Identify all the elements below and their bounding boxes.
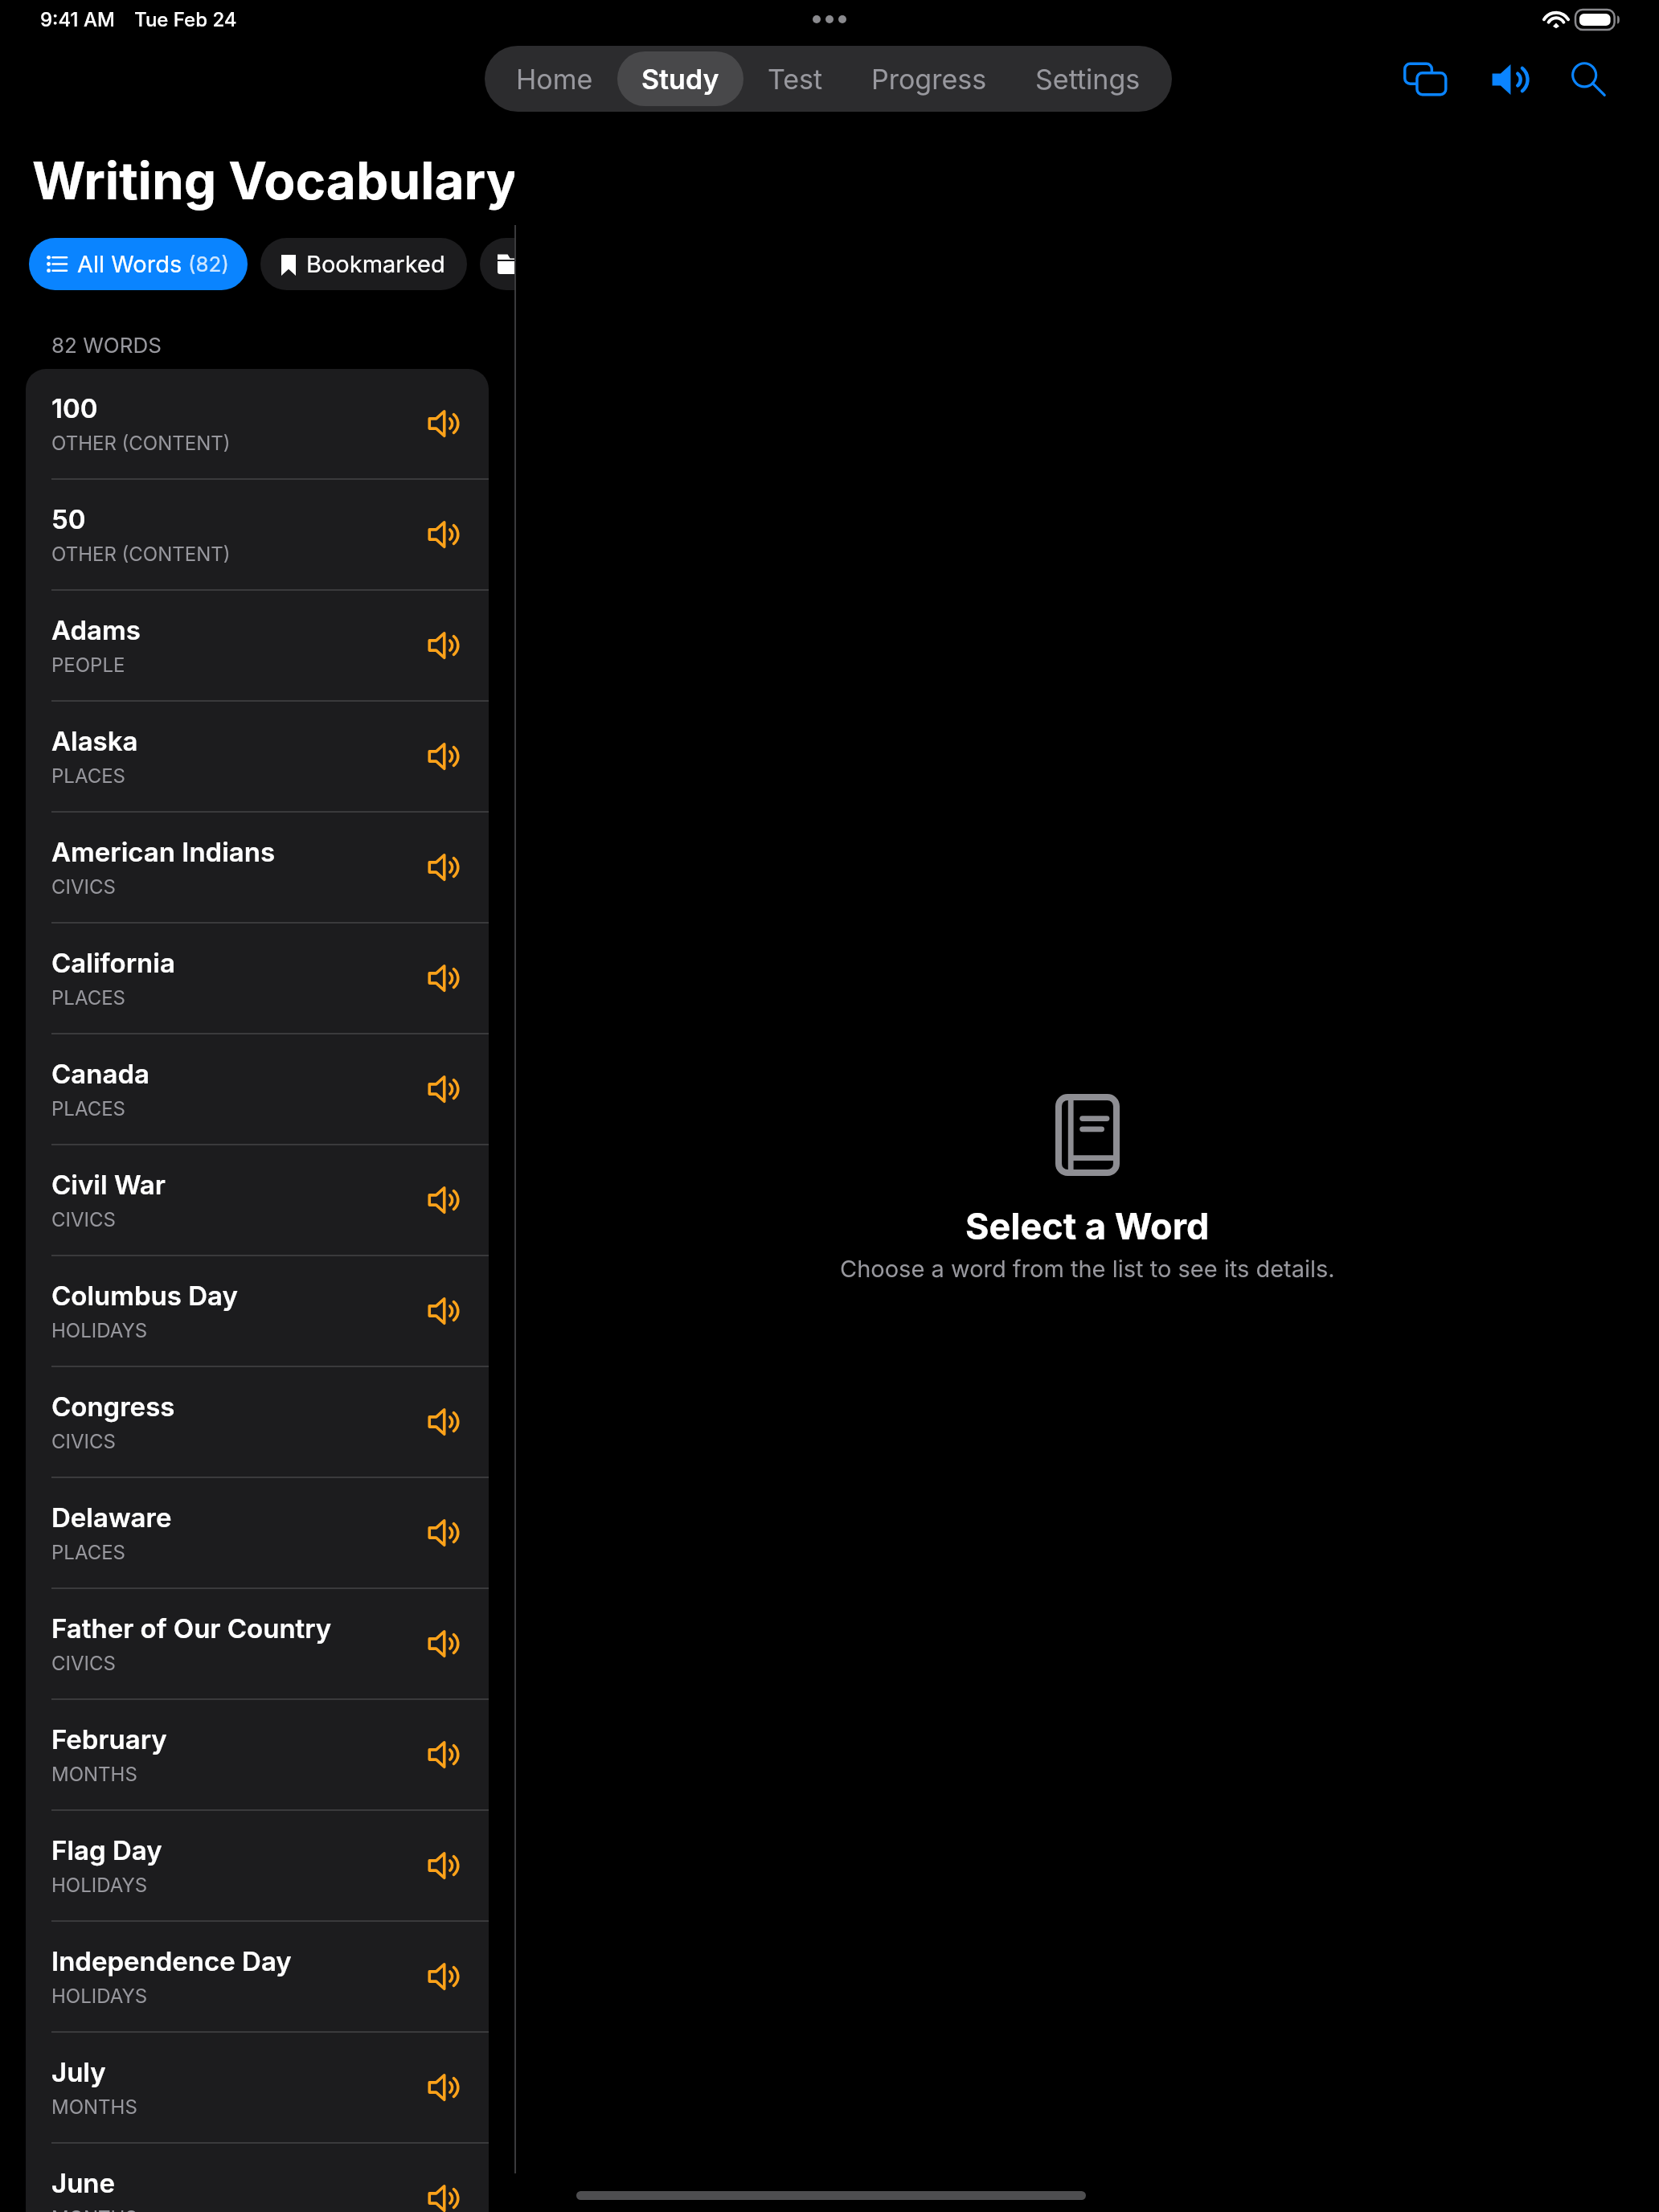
staticText: OTHER (CONTENT) [51, 543, 231, 566]
button[interactable]: Play pronunciation [419, 1728, 472, 1781]
button[interactable]: Play pronunciation [419, 1617, 472, 1670]
button[interactable]: Civil War [26, 1145, 489, 1255]
staticText: Choose a word from the list to see its d… [840, 1255, 1335, 1283]
button[interactable]: Play pronunciation [419, 2061, 472, 2114]
button[interactable]: Adams [26, 591, 489, 700]
button[interactable]: 100 [26, 369, 489, 478]
button[interactable]: Independence Day [26, 1922, 489, 2031]
button[interactable]: Columbus Day [26, 1256, 489, 1366]
staticText: June [51, 2167, 116, 2199]
staticText: All Words [77, 250, 182, 278]
button[interactable]: Play pronunciation [419, 841, 472, 894]
staticText: CIVICS [51, 875, 116, 899]
button[interactable]: All Words [29, 238, 248, 290]
staticText: Bookmarked [306, 250, 445, 278]
staticText: Flag Day [51, 1834, 162, 1866]
button[interactable]: Settings [1011, 51, 1165, 106]
staticText: 82 WORDS [51, 333, 162, 358]
button[interactable]: Play pronunciation [419, 1174, 472, 1227]
staticText: California [51, 947, 175, 979]
button[interactable]: Canada [26, 1034, 489, 1144]
staticText: CIVICS [51, 1208, 116, 1231]
button[interactable]: Play pronunciation [419, 1506, 472, 1559]
button[interactable]: American Indians [26, 813, 489, 922]
staticText: Home [516, 63, 593, 96]
button[interactable]: Delaware [26, 1478, 489, 1587]
button[interactable]: Play pronunciation [419, 1839, 472, 1892]
button[interactable]: Play pronunciation [419, 508, 472, 561]
button[interactable]: February [26, 1700, 489, 1809]
staticText: MONTHS [51, 1763, 137, 1786]
button[interactable]: Father of Our Country [26, 1589, 489, 1698]
button[interactable]: Play pronunciation [419, 730, 472, 783]
staticText: HOLIDAYS [51, 1874, 148, 1897]
staticText: MONTHS [51, 2095, 137, 2119]
button[interactable]: Flag Day [26, 1811, 489, 1920]
staticText: Writing Vocabulary [32, 150, 514, 211]
staticText: CIVICS [51, 1430, 116, 1453]
staticText: Father of Our Country [51, 1612, 332, 1645]
button[interactable]: California [26, 924, 489, 1033]
button[interactable]: Bookmarked [260, 238, 467, 290]
staticText: HOLIDAYS [51, 1985, 148, 2008]
button[interactable]: Search [1552, 44, 1624, 115]
button[interactable]: July [26, 2033, 489, 2142]
button[interactable]: Study [617, 51, 743, 106]
button[interactable]: Congress [26, 1367, 489, 1477]
staticText: PLACES [51, 764, 125, 788]
button[interactable]: Play pronunciation [419, 2172, 472, 2212]
staticText: Settings [1035, 63, 1141, 96]
staticText: American Indians [51, 836, 276, 868]
staticText: PLACES [51, 1541, 125, 1564]
button[interactable]: Play pronunciation [419, 619, 472, 672]
staticText: Tue Feb 24 [134, 8, 237, 31]
staticText: Congress [51, 1391, 175, 1423]
button[interactable]: 50 [26, 480, 489, 589]
staticText: PLACES [51, 986, 125, 1010]
staticText: CIVICS [51, 1652, 116, 1675]
button[interactable]: Alaska [26, 702, 489, 811]
staticText: 9:41 AM [40, 8, 115, 31]
button[interactable]: June [26, 2144, 489, 2212]
button[interactable]: Play pronunciation [419, 397, 472, 450]
staticText: 100 [51, 392, 98, 424]
staticText: PLACES [51, 1097, 125, 1120]
button[interactable]: Categories [480, 238, 514, 290]
staticText: 50 [51, 503, 86, 535]
staticText: Adams [51, 614, 141, 646]
staticText: July [51, 2056, 106, 2088]
staticText: Select a Word [965, 1204, 1210, 1247]
staticText: MONTHS [51, 2206, 137, 2212]
staticText: Delaware [51, 1501, 172, 1534]
staticText: Civil War [51, 1169, 166, 1201]
staticText: Study [641, 63, 719, 96]
staticText: February [51, 1723, 167, 1755]
staticText: HOLIDAYS [51, 1319, 148, 1342]
staticText: Columbus Day [51, 1280, 238, 1312]
button[interactable]: Test [743, 51, 847, 106]
button[interactable]: Play pronunciation [419, 1063, 472, 1116]
staticText: Alaska [51, 725, 138, 757]
staticText: Canada [51, 1058, 150, 1090]
button[interactable]: Split view [1389, 44, 1461, 115]
button[interactable]: Speak [1476, 44, 1548, 115]
staticText: Progress [871, 63, 987, 96]
staticText: Independence Day [51, 1945, 292, 1977]
staticText: Test [768, 63, 823, 96]
button[interactable]: Home [492, 51, 617, 106]
staticText: PEOPLE [51, 653, 125, 677]
button[interactable]: Play pronunciation [419, 1950, 472, 2003]
staticText: (82) [188, 252, 229, 276]
button[interactable]: Progress [847, 51, 1011, 106]
staticText: OTHER (CONTENT) [51, 432, 231, 455]
button[interactable]: Play pronunciation [419, 952, 472, 1005]
button[interactable]: Play pronunciation [419, 1395, 472, 1448]
button[interactable]: Play pronunciation [419, 1284, 472, 1337]
